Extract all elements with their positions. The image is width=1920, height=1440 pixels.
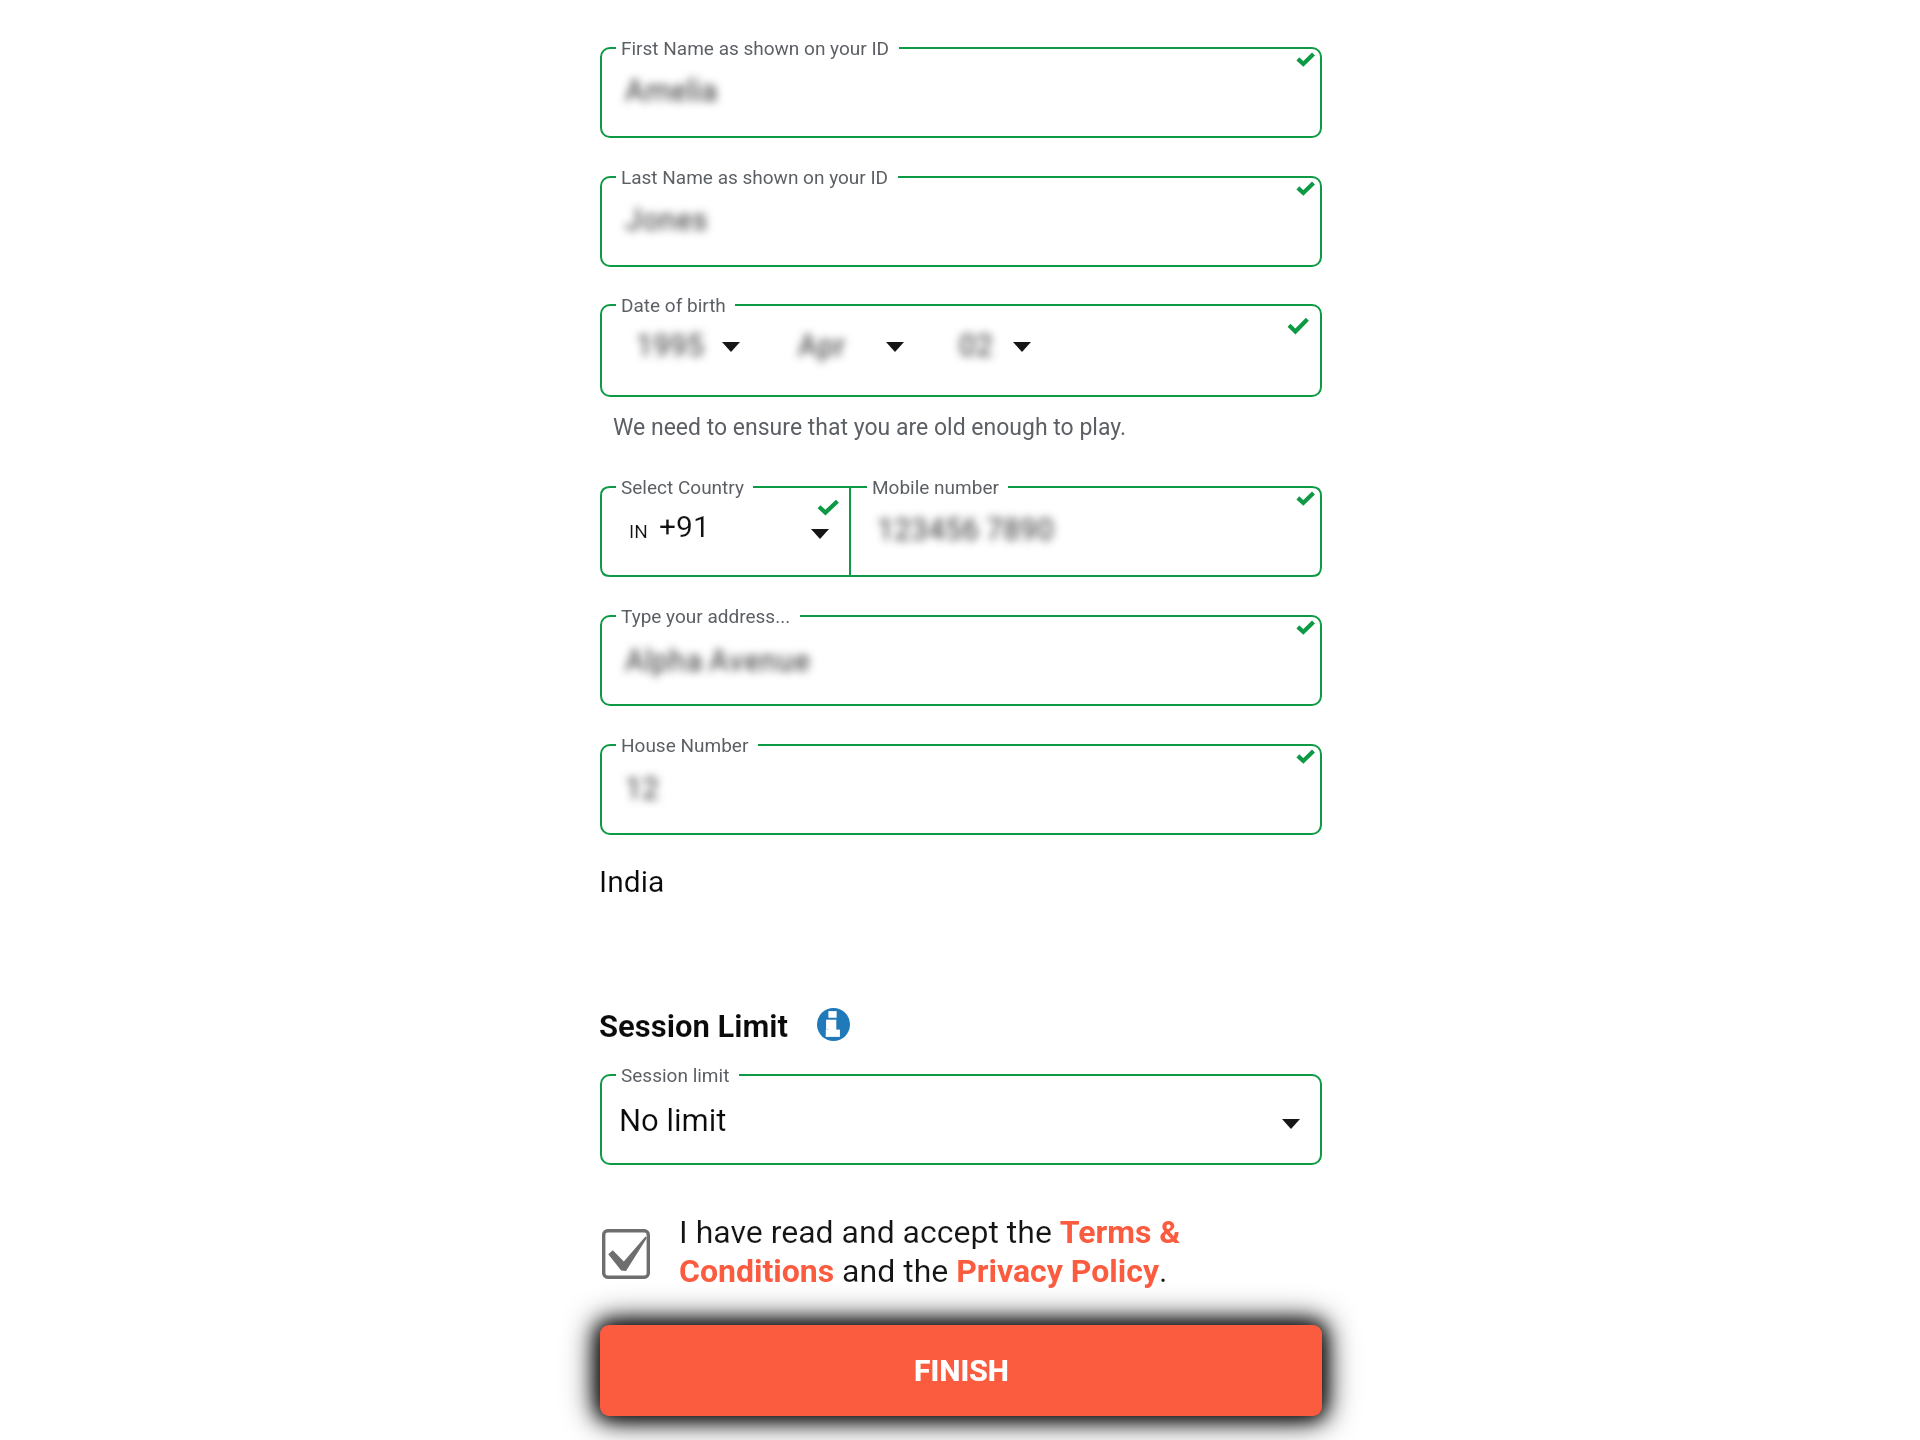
button[interactable]: Session limit information	[817, 1008, 850, 1041]
button[interactable]	[600, 744, 1322, 835]
button[interactable]	[600, 47, 1322, 138]
staticText: No limit	[619, 1102, 727, 1138]
button[interactable]	[851, 486, 1322, 577]
staticText: House Number	[621, 734, 749, 756]
staticText: FINISH	[914, 1353, 1009, 1388]
button[interactable]	[600, 176, 1322, 267]
staticText: India	[599, 864, 665, 899]
button[interactable]: FINISH	[600, 1325, 1322, 1416]
staticText: We need to ensure that you are old enoug…	[613, 414, 1127, 441]
button[interactable]	[600, 1074, 1322, 1165]
staticText: Mobile number	[872, 476, 999, 498]
staticText: IN	[629, 520, 648, 542]
staticText: First Name as shown on your ID	[621, 37, 890, 59]
staticText: Select Country	[621, 476, 744, 498]
staticText: Session limit	[621, 1064, 730, 1086]
staticText: I have read and accept the Terms & Condi…	[679, 1213, 1191, 1290]
staticText: Last Name as shown on your ID	[621, 166, 889, 188]
button[interactable]: Accept terms and conditions	[602, 1229, 650, 1279]
staticText: Session Limit	[599, 1008, 788, 1044]
button[interactable]	[600, 486, 851, 577]
staticText: Type your address...	[621, 605, 791, 627]
staticText: Date of birth	[621, 294, 726, 316]
button[interactable]	[600, 304, 1322, 397]
button[interactable]	[600, 615, 1322, 706]
staticText: +91	[659, 509, 710, 544]
